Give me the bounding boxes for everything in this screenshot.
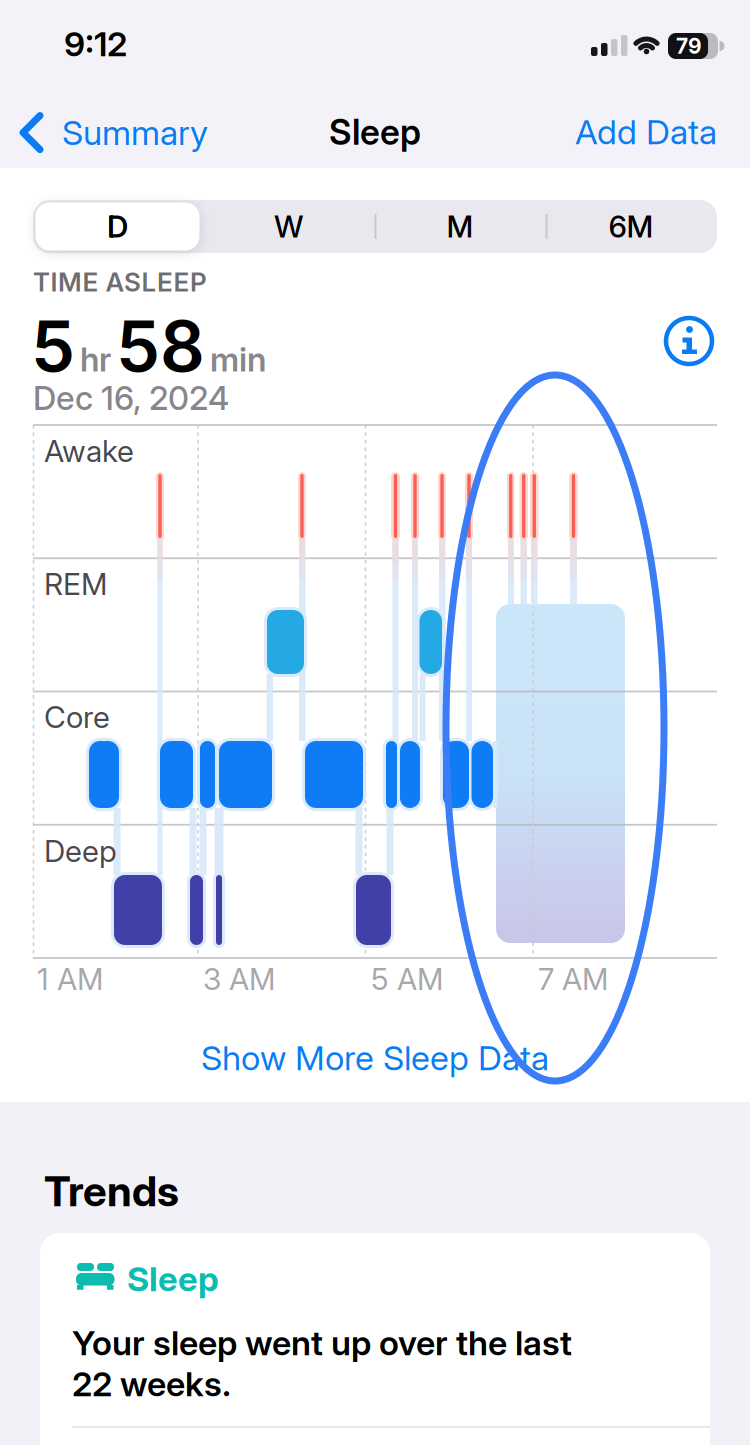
staticText: TIME ASLEEP [33, 266, 207, 298]
staticText: Show More Sleep Data [201, 1037, 549, 1078]
staticText: Sleep [329, 111, 421, 153]
staticText: 6M [608, 208, 653, 245]
button[interactable]: Info [664, 316, 714, 366]
staticText: 58 [116, 304, 205, 388]
staticText: 1 AM [37, 961, 103, 997]
staticText: 5 AM [371, 961, 443, 997]
staticText: 9:12 [64, 23, 127, 64]
staticText: Your sleep went up over the last [72, 1322, 572, 1363]
button[interactable]: Summary [19, 112, 208, 153]
staticText: M [446, 208, 473, 245]
staticText: Awake [44, 433, 134, 469]
button[interactable]: M [375, 201, 545, 251]
button[interactable]: Sleep [40, 1233, 710, 1445]
staticText: hr [80, 339, 111, 379]
staticText: Trends [44, 1166, 179, 1216]
staticText: Dec 16, 2024 [33, 378, 229, 418]
staticText: 7 AM [538, 961, 608, 997]
button[interactable]: Show More Sleep Data [201, 1037, 549, 1078]
staticText: 79 [676, 33, 702, 59]
staticText: Add Data [575, 111, 717, 152]
staticText: 3 AM [203, 961, 275, 997]
button[interactable]: Add Data [575, 111, 717, 152]
staticText: 5 [31, 304, 75, 388]
staticText: REM [44, 566, 107, 602]
button[interactable]: D [35, 202, 199, 250]
staticText: D [107, 208, 128, 245]
button[interactable]: W [204, 201, 374, 251]
staticText: Summary [62, 112, 208, 153]
staticText: min [210, 339, 266, 379]
staticText: W [274, 208, 304, 245]
staticText: Deep [44, 833, 117, 869]
staticText: Core [44, 699, 110, 735]
button[interactable]: 6M [546, 201, 716, 251]
staticText: 22 weeks. [72, 1363, 231, 1404]
staticText: Sleep [127, 1258, 219, 1299]
